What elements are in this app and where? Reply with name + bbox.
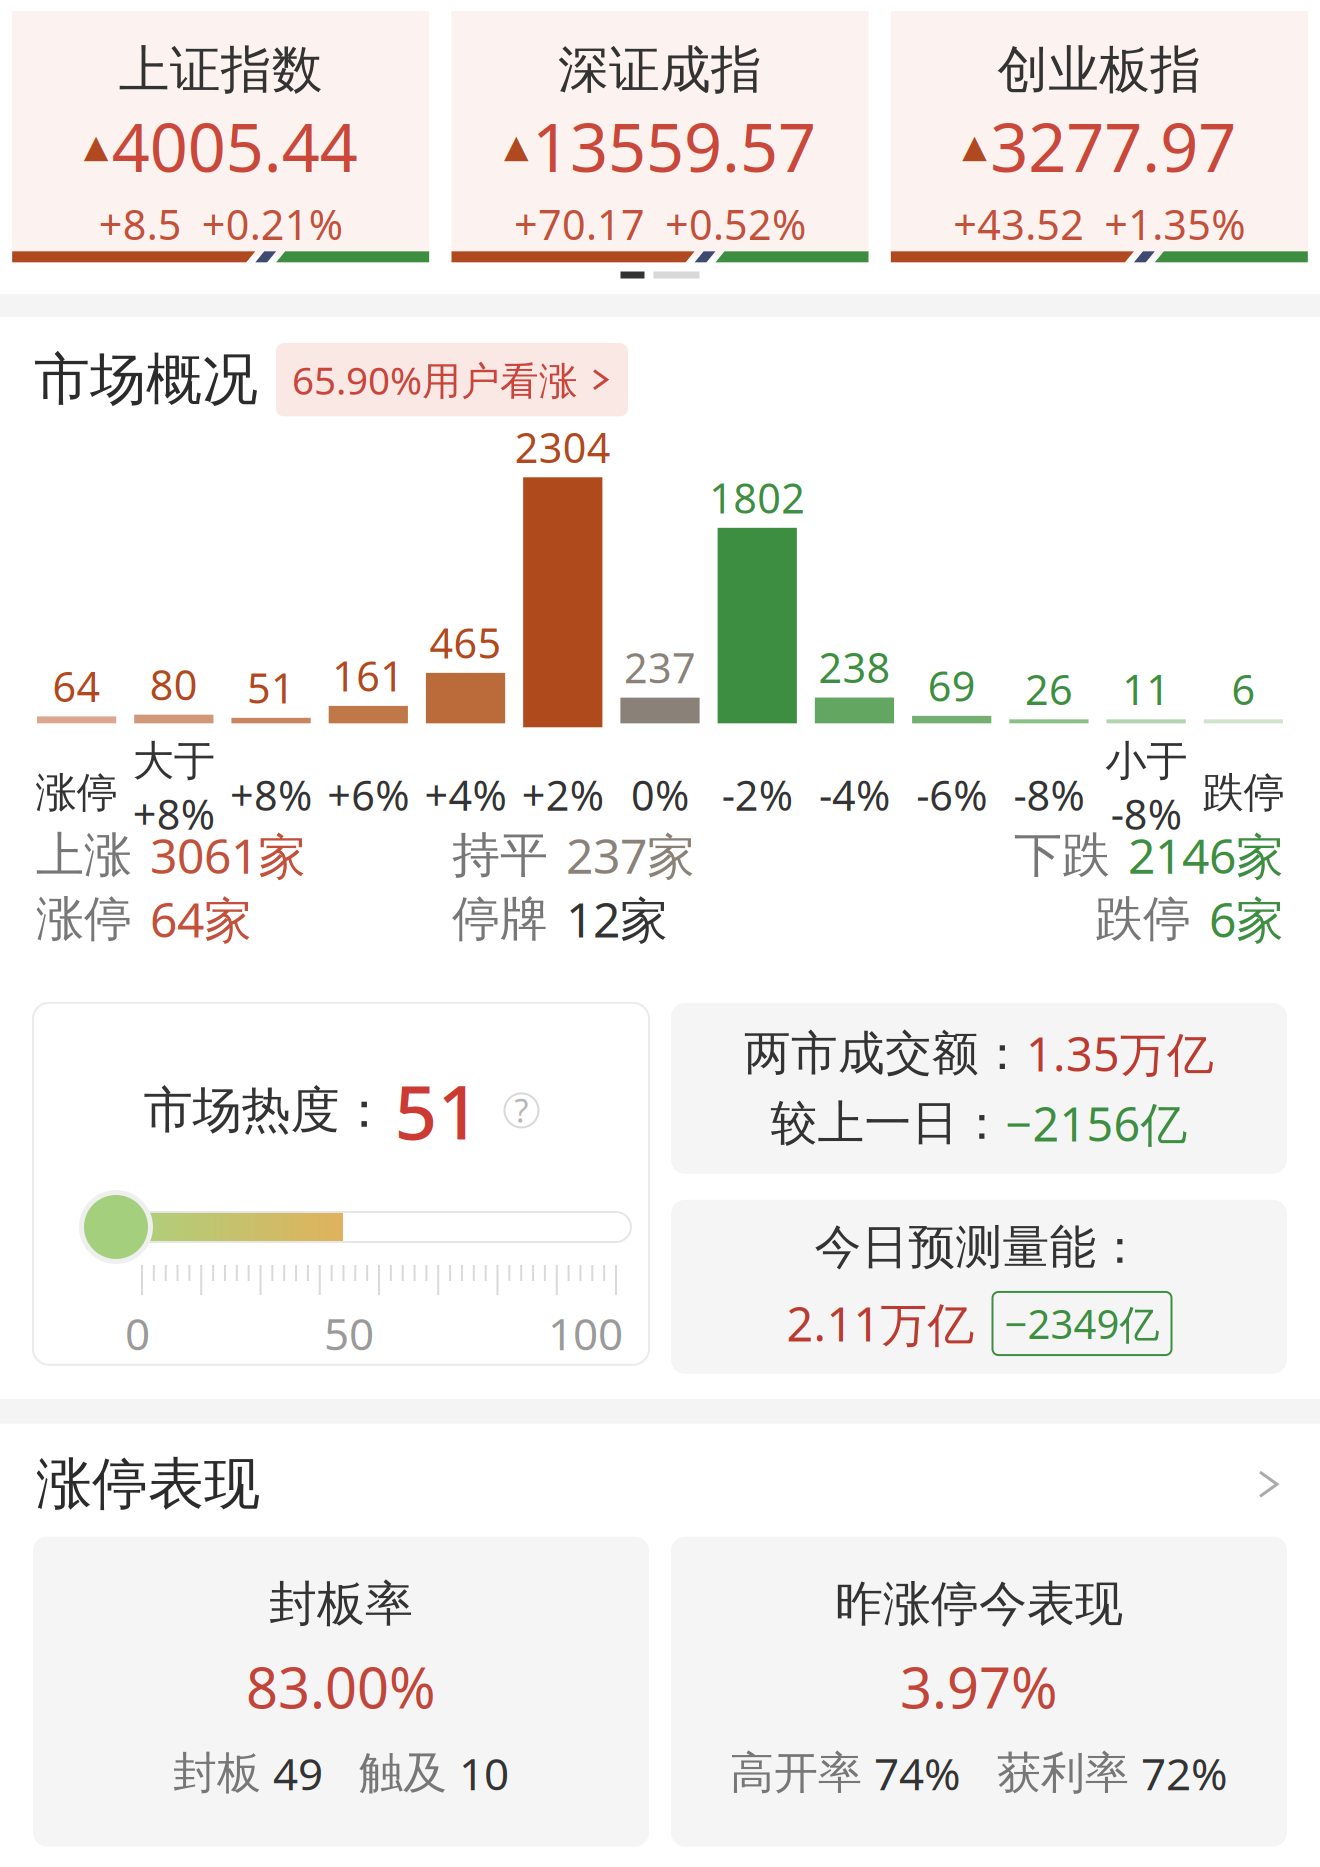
staticText: +0.21% — [202, 196, 343, 251]
staticText: -8% — [1111, 786, 1182, 841]
staticText: 涨停表现 — [36, 1450, 260, 1519]
staticText: 市场热度： — [143, 1080, 388, 1141]
staticText: 100 — [548, 1304, 623, 1362]
staticText: 获利率 — [997, 1746, 1129, 1800]
staticText: +2% — [522, 767, 604, 822]
staticText: 封板 — [173, 1746, 261, 1800]
staticText: 触及 — [359, 1746, 447, 1800]
staticText: -6% — [916, 767, 987, 822]
staticText: 51 — [394, 1061, 480, 1160]
staticText: 1802 — [709, 470, 805, 525]
staticText: 465 — [429, 615, 501, 670]
staticText: +8% — [133, 786, 215, 841]
button[interactable]: 上证指数 — [12, 11, 429, 256]
button[interactable]: 昨涨停今表现 — [671, 1537, 1287, 1847]
button[interactable]: 封板率 — [33, 1537, 649, 1847]
staticText: 13559.57 — [532, 102, 816, 190]
staticText: 74% — [874, 1744, 961, 1802]
staticText: 64 — [53, 658, 101, 713]
staticText: 51 — [247, 660, 295, 715]
staticText: +70.17 — [514, 196, 645, 251]
staticText: 80 — [150, 657, 198, 712]
staticText: 6 — [1231, 661, 1255, 716]
staticText: 3061家 — [150, 823, 306, 887]
staticText: 创业板指 — [997, 39, 1201, 101]
staticText: 两市成交额： — [744, 1025, 1026, 1082]
staticText: 4005.44 — [112, 102, 358, 190]
staticText: 69 — [928, 658, 976, 713]
staticText: 65.90%用户看涨 — [292, 354, 578, 405]
staticText: 49 — [273, 1744, 323, 1802]
staticText: 83.00% — [246, 1650, 436, 1724]
staticText: +0.52% — [665, 196, 806, 251]
staticText: 涨停 — [36, 889, 132, 948]
button[interactable]: 65.90%用户看涨 — [276, 343, 628, 416]
staticText: 50 — [324, 1304, 374, 1362]
staticText: -2% — [722, 767, 793, 822]
button[interactable]: 创业板指 — [891, 11, 1308, 256]
staticText: 2146家 — [1128, 823, 1284, 887]
staticText: 持平 — [452, 826, 548, 885]
staticText: ▲ — [962, 128, 987, 164]
staticText: ▲ — [84, 128, 109, 164]
staticText: 1.35万亿 — [1026, 1022, 1214, 1084]
staticText: 72% — [1141, 1744, 1228, 1802]
staticText: 2.11万亿 — [786, 1292, 974, 1354]
staticText: 11 — [1122, 661, 1170, 716]
staticText: 3.97% — [900, 1650, 1058, 1724]
staticText: 停牌 — [452, 889, 548, 948]
staticText: 10 — [459, 1744, 509, 1802]
staticText: 较上一日： — [770, 1095, 1005, 1152]
staticText: 小于 — [1105, 735, 1187, 786]
staticText: 高开率 — [730, 1746, 862, 1800]
staticText: 0 — [125, 1304, 150, 1362]
staticText: 6家 — [1209, 887, 1284, 951]
staticText: -4% — [819, 767, 890, 822]
staticText: ? — [514, 1089, 528, 1132]
staticText: 昨涨停今表现 — [835, 1575, 1123, 1634]
staticText: +8% — [230, 767, 312, 822]
staticText: 大于 — [133, 735, 215, 786]
staticText: +8.5 — [99, 196, 182, 251]
staticText: 237家 — [566, 823, 695, 887]
staticText: 237 — [624, 640, 696, 695]
staticText: +4% — [424, 767, 506, 822]
staticText: +43.52 — [953, 196, 1084, 251]
button[interactable]: 涨停表现 — [0, 1424, 1320, 1527]
staticText: 封板率 — [269, 1575, 413, 1634]
staticText: 12家 — [566, 887, 668, 951]
staticText: 238 — [818, 640, 890, 694]
staticText: −2156亿 — [1005, 1092, 1187, 1154]
staticText: +6% — [327, 767, 409, 822]
staticText: 161 — [332, 648, 404, 703]
staticText: 26 — [1025, 661, 1073, 716]
staticText: 3277.97 — [990, 102, 1236, 190]
staticText: 市场概况 — [34, 345, 258, 414]
staticText: 上涨 — [36, 826, 132, 885]
staticText: 2304 — [515, 419, 611, 474]
staticText: 上证指数 — [119, 39, 323, 101]
staticText: 涨停 — [36, 767, 118, 818]
button[interactable]: 深证成指 — [451, 11, 869, 256]
staticText: 深证成指 — [558, 39, 762, 101]
staticText: 64家 — [150, 887, 252, 951]
staticText: -8% — [1013, 767, 1084, 822]
staticText: −2349亿 — [1004, 1297, 1159, 1350]
staticText: 下跌 — [1014, 826, 1110, 885]
staticText: ▲ — [504, 128, 529, 164]
staticText: 跌停 — [1095, 889, 1191, 948]
staticText: +1.35% — [1104, 196, 1245, 251]
staticText: 0% — [631, 767, 689, 822]
staticText: 跌停 — [1202, 767, 1284, 818]
staticText: 今日预测量能： — [814, 1219, 1143, 1276]
